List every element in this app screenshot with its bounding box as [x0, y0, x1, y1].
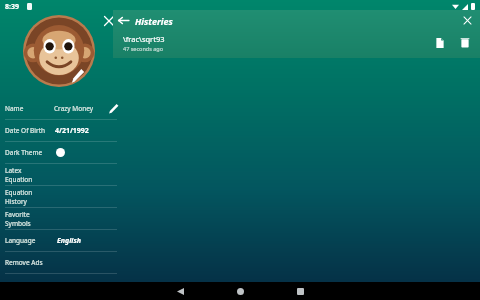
staticText: Feedback: [5, 280, 34, 289]
button[interactable]: Language: [0, 230, 125, 252]
button[interactable]: Favorite Symbols: [0, 208, 125, 230]
staticText: Remove Ads: [5, 258, 43, 267]
staticText: 47 seconds ago: [123, 45, 164, 52]
button[interactable]: Recents: [289, 282, 311, 300]
staticText: 4/21/1992: [55, 126, 89, 136]
button[interactable]: Delete: [458, 36, 472, 50]
button[interactable]: Copy: [433, 36, 447, 50]
button[interactable]: Change profile picture: [23, 15, 95, 87]
button[interactable]: Home: [229, 282, 251, 300]
button[interactable]: Feedback: [0, 274, 125, 296]
staticText: Favorite Symbols: [5, 210, 50, 228]
button[interactable]: Remove Ads: [0, 252, 125, 274]
button[interactable]: Dark theme toggle: [56, 148, 65, 157]
staticText: Histeries: [135, 15, 173, 27]
button[interactable]: Name: [0, 98, 125, 120]
button[interactable]: \frac\sqrt93: [113, 31, 480, 55]
staticText: Latex Equation: [5, 166, 50, 184]
button[interactable]: Close dialog: [102, 14, 116, 28]
staticText: Name: [5, 104, 24, 113]
staticText: English: [57, 236, 81, 246]
staticText: \frac\sqrt93: [123, 34, 165, 44]
staticText: Crazy Money: [54, 104, 94, 113]
button[interactable]: Date Of Birth: [0, 120, 125, 142]
staticText: Language: [5, 236, 36, 245]
button[interactable]: Equation History: [0, 186, 125, 208]
staticText: Equation History: [5, 188, 50, 206]
staticText: Date Of Birth: [5, 126, 46, 135]
button[interactable]: Latex Equation: [0, 164, 125, 186]
button[interactable]: Clear histories: [462, 15, 473, 26]
button[interactable]: Dark Theme: [0, 142, 125, 164]
staticText: Dark Theme: [5, 148, 43, 157]
button[interactable]: Back: [169, 282, 191, 300]
button[interactable]: Back: [117, 14, 130, 27]
staticText: 8:39: [5, 2, 19, 12]
